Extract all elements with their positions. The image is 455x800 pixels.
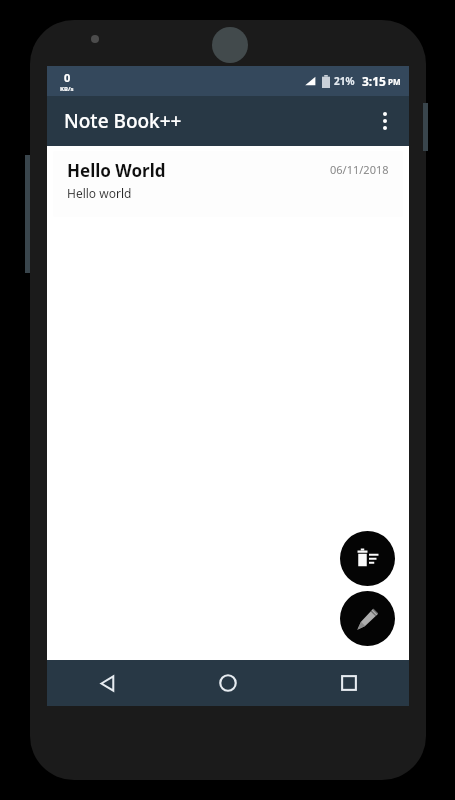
button[interactable]: Recent apps bbox=[288, 660, 409, 706]
staticText: 06/11/2018 bbox=[330, 162, 389, 177]
staticText: KB/s bbox=[60, 85, 74, 93]
button[interactable]: Hello World bbox=[53, 151, 403, 217]
staticText: 3:15 bbox=[362, 73, 386, 89]
button[interactable]: Home bbox=[167, 660, 288, 706]
button[interactable]: Delete all notes bbox=[340, 531, 395, 586]
staticText: Hello World bbox=[67, 159, 166, 182]
staticText: Note Book++ bbox=[64, 108, 182, 134]
staticText: 0 bbox=[64, 70, 71, 85]
staticText: Hello world bbox=[67, 185, 132, 201]
staticText: PM bbox=[388, 76, 401, 87]
button[interactable]: New note bbox=[340, 591, 395, 646]
staticText: 21% bbox=[334, 74, 355, 88]
button[interactable]: More options bbox=[361, 97, 409, 145]
button[interactable]: Back bbox=[47, 660, 167, 706]
